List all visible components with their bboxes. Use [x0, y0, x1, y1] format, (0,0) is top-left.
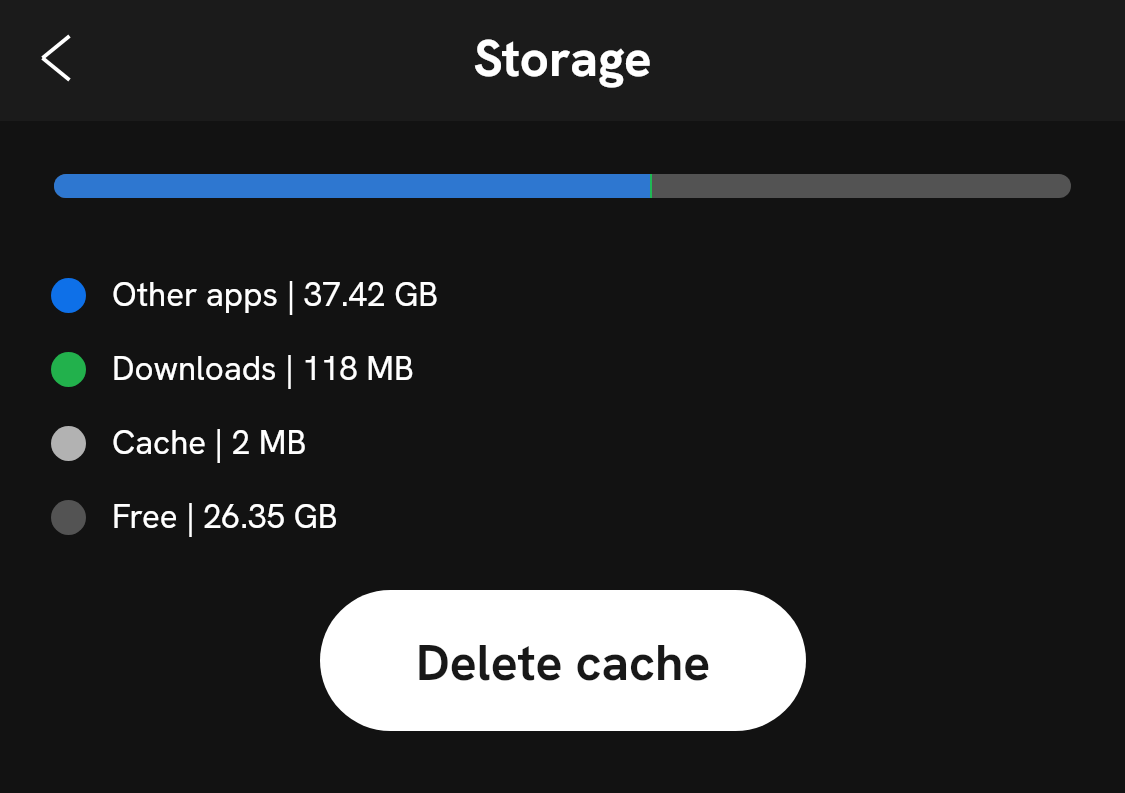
- button[interactable]: Downloads | 118 MB: [0, 332, 1125, 406]
- button[interactable]: Other apps | 37.42 GB: [0, 258, 1125, 332]
- staticText: Delete cache: [416, 630, 711, 695]
- staticText: Free | 26.35 GB: [112, 495, 338, 538]
- staticText: Downloads | 118 MB: [112, 347, 414, 390]
- button[interactable]: Free | 26.35 GB: [0, 480, 1125, 554]
- button[interactable]: Cache | 2 MB: [0, 406, 1125, 480]
- staticText: Cache | 2 MB: [112, 421, 307, 464]
- staticText: Storage: [473, 25, 652, 91]
- staticText: Other apps | 37.42 GB: [112, 273, 439, 316]
- button[interactable]: Back: [25, 27, 87, 89]
- button[interactable]: Delete cache: [320, 590, 806, 731]
